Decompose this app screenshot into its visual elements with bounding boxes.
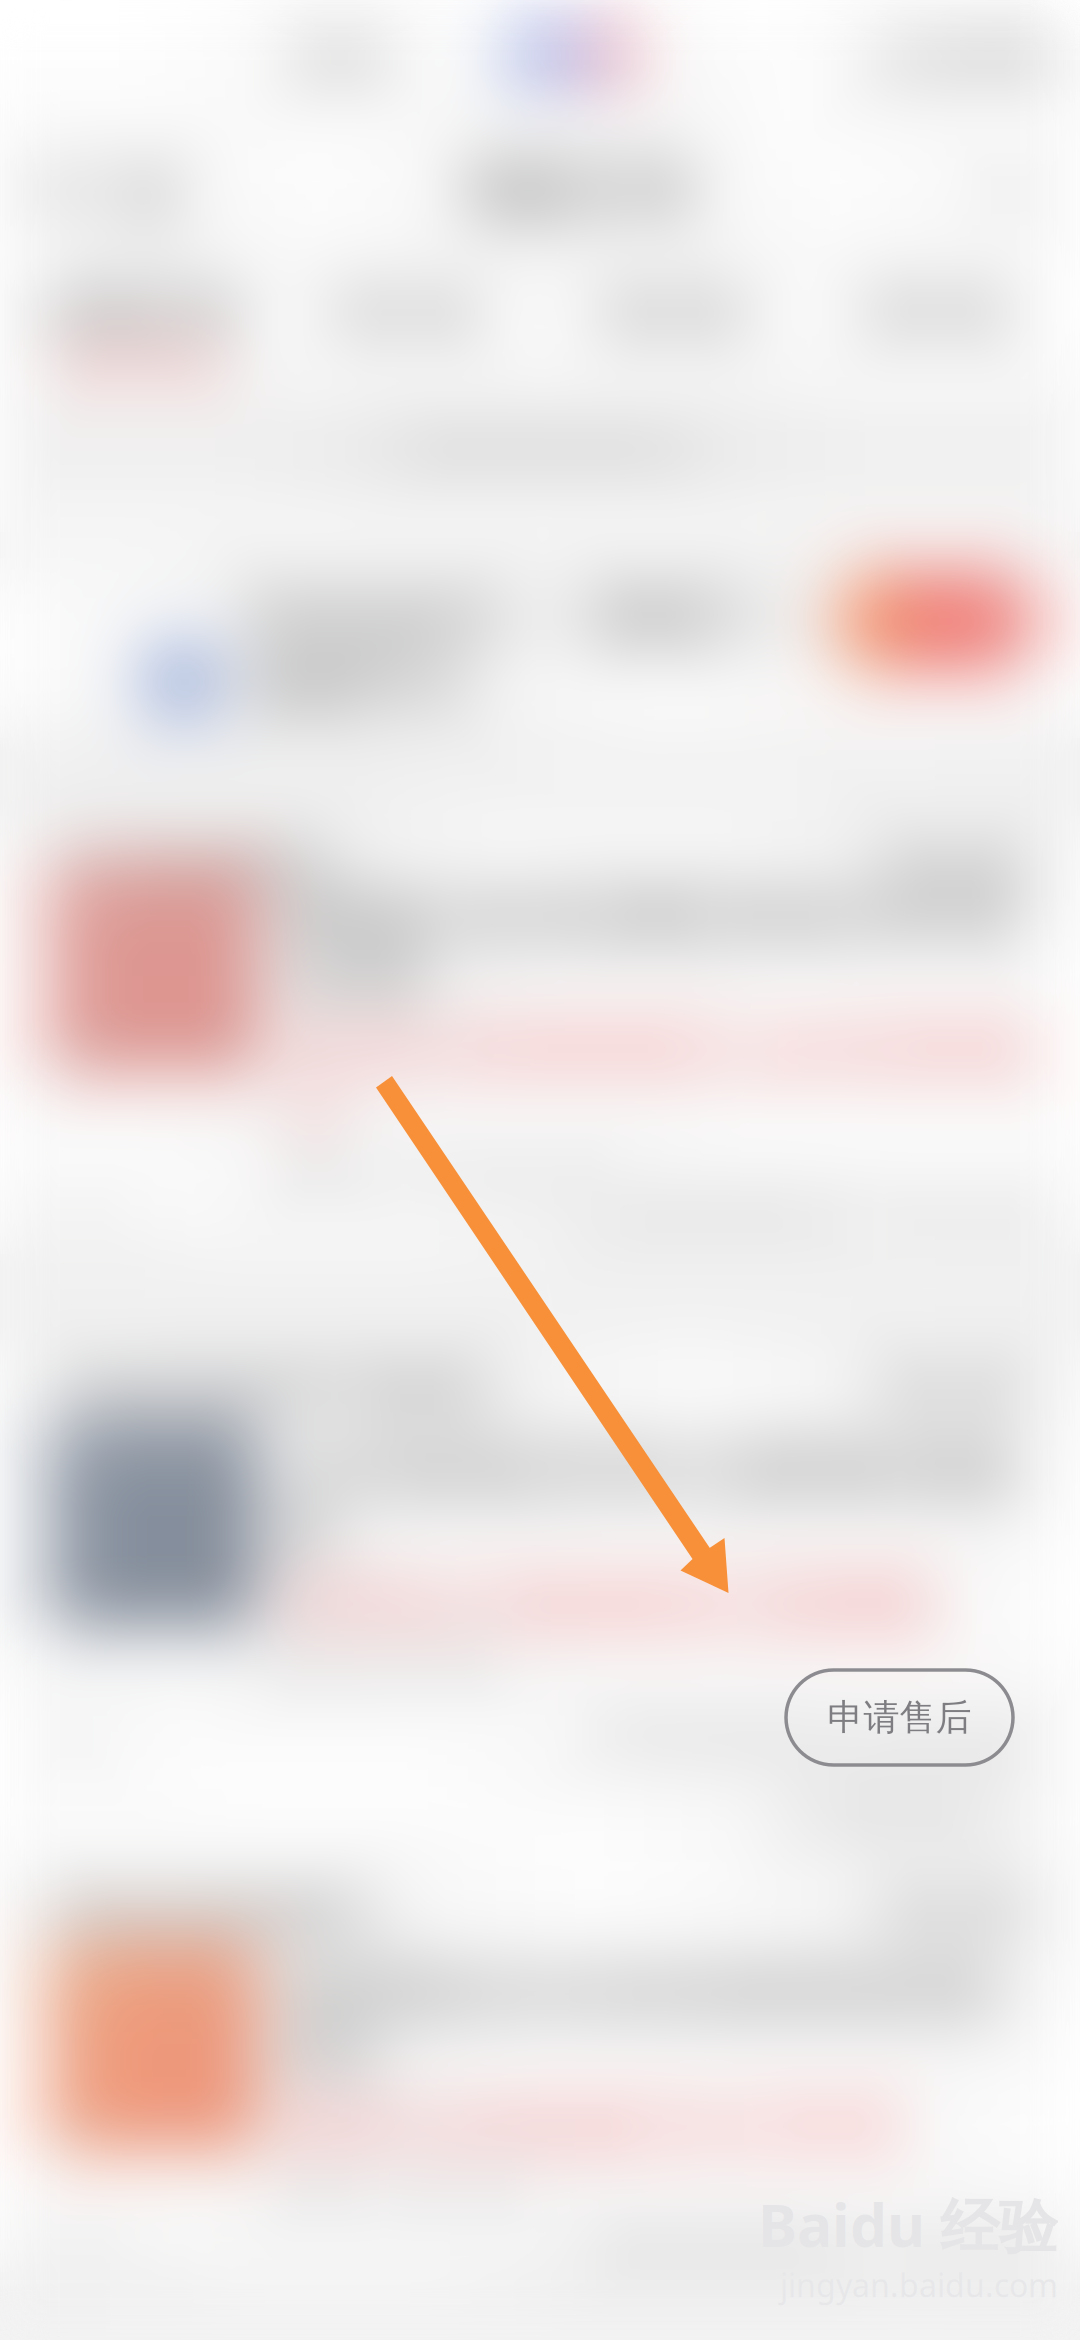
- staticText: 交易成功: [872, 1363, 1036, 1413]
- button[interactable]: 京东自营旗舰店: [0, 816, 1080, 912]
- staticText: Baidu 经验: [758, 2185, 1058, 2263]
- staticText: 休闲零食大礼包 每日坚果混合果仁组合: [284, 1964, 1018, 2082]
- staticText: ¥299.00 以旧换新补贴 赠运费险: [284, 1573, 934, 1632]
- staticText: 小米京东自营官方旗舰店: [44, 1363, 495, 1413]
- button[interactable]: 京: [0, 558, 1080, 738]
- button[interactable]: 待付款: [302, 269, 512, 385]
- button[interactable]: 全部订单: [36, 269, 246, 385]
- staticText: ¥159.00 限时直降20元 plus会员再减10: [284, 1018, 1028, 1135]
- button[interactable]: 申请售后: [786, 1670, 1013, 1765]
- staticText: 京: [159, 652, 204, 708]
- button[interactable]: 泰国进口金枕头榴莲 新鲜冷冻水果礼盒装: [0, 912, 1080, 1168]
- staticText: 共1件商品 实付：¥299.00: [587, 1709, 1036, 1761]
- staticText: 京东自营旗舰店: [44, 839, 331, 889]
- staticText: 规格：2.5kg 冷冻装: [284, 1149, 592, 1195]
- button[interactable]: 小米京东自营官方旗舰店: [0, 1340, 1080, 1436]
- button[interactable]: 休闲零食大礼包 每日坚果混合果仁组合: [0, 1960, 1080, 2216]
- staticText: 立即开通: [858, 597, 1018, 646]
- staticText: 共2件商品 实付：¥179.80: [587, 2218, 1036, 2270]
- staticText: 颜色：曜石黑: [284, 1646, 494, 1688]
- button[interactable]: 待评价: [834, 269, 1044, 385]
- button[interactable]: 小米无线蓝牙耳机 主动降噪长续航版: [0, 1436, 1080, 1692]
- staticText: 申请售后: [827, 1695, 971, 1740]
- staticText: 规格：750g/箱: [284, 2168, 518, 2214]
- staticText: 全部订单: [45, 283, 237, 342]
- staticText: 百草味食品旗舰店: [44, 1887, 372, 1937]
- staticText: 小米无线蓝牙耳机 主动降噪长续航版: [284, 1441, 1018, 1559]
- staticText: 交易成功: [872, 839, 1036, 889]
- staticText: 我的订单: [468, 157, 692, 225]
- staticText: PLUS会员 ｜ 省钱卡 ｜ 领券中心: [250, 576, 826, 720]
- staticText: ¥89.90 满199减30 新人专享券: [284, 2096, 898, 2154]
- button[interactable]: 待收货: [568, 269, 778, 385]
- staticText: 泰国进口金枕头榴莲 新鲜冷冻水果礼盒装: [284, 887, 1018, 1004]
- staticText: 交易成功: [872, 1887, 1036, 1937]
- button[interactable]: 搜索我的订单: [0, 388, 1080, 532]
- button[interactable]: 百草味食品旗舰店: [0, 1864, 1080, 1960]
